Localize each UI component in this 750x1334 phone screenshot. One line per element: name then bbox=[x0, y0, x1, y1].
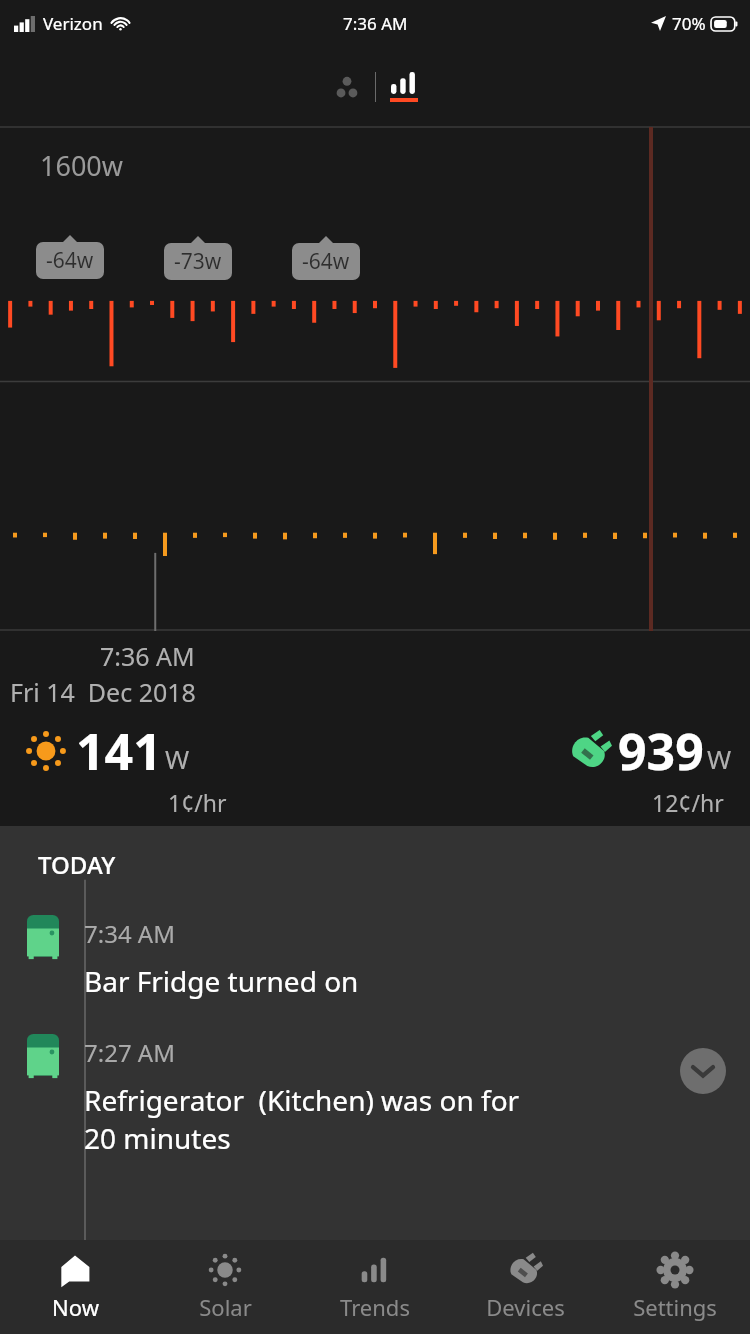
staticText: 7:36 AM bbox=[343, 12, 408, 35]
staticText: Now bbox=[52, 1292, 99, 1322]
button[interactable]: Devices view bbox=[319, 61, 375, 113]
button[interactable]: Trends bbox=[300, 1240, 450, 1334]
staticText: 1¢/hr bbox=[168, 787, 227, 818]
staticText: 70% bbox=[672, 12, 706, 35]
button[interactable]: Power graph view bbox=[376, 61, 432, 113]
button[interactable]: Devices bbox=[450, 1240, 600, 1334]
staticText: W bbox=[165, 741, 190, 776]
button[interactable]: 7:34 AM bbox=[0, 915, 750, 1000]
staticText: 1600w bbox=[40, 147, 123, 184]
staticText: Bar Fridge turned on bbox=[84, 962, 359, 1000]
staticText: 7:27 AM bbox=[84, 1036, 175, 1069]
staticText: -64w bbox=[46, 246, 94, 275]
staticText: 7:36 AM bbox=[100, 639, 195, 673]
staticText: Fri 14 Dec 2018 bbox=[10, 675, 196, 709]
staticText: -64w bbox=[302, 247, 350, 276]
staticText: 939 bbox=[618, 717, 704, 785]
button[interactable]: Now bbox=[0, 1240, 150, 1334]
staticText: Settings bbox=[633, 1292, 717, 1322]
button[interactable]: Expand bbox=[680, 1048, 726, 1094]
staticText: 12¢/hr bbox=[652, 787, 724, 818]
staticText: Verizon bbox=[43, 12, 103, 35]
button[interactable]: Settings bbox=[600, 1240, 750, 1334]
staticText: -73w bbox=[174, 247, 222, 276]
staticText: Refrigerator (Kitchen) was on for 20 min… bbox=[84, 1081, 520, 1157]
staticText: Devices bbox=[486, 1292, 565, 1322]
button[interactable]: Solar bbox=[150, 1240, 300, 1334]
staticText: Solar bbox=[199, 1292, 252, 1322]
staticText: 141 bbox=[76, 717, 162, 785]
staticText: Trends bbox=[340, 1292, 410, 1322]
staticText: W bbox=[707, 741, 732, 776]
button[interactable]: 7:27 AM bbox=[0, 1034, 750, 1157]
staticText: 7:34 AM bbox=[84, 917, 175, 950]
staticText: TODAY bbox=[38, 848, 116, 881]
